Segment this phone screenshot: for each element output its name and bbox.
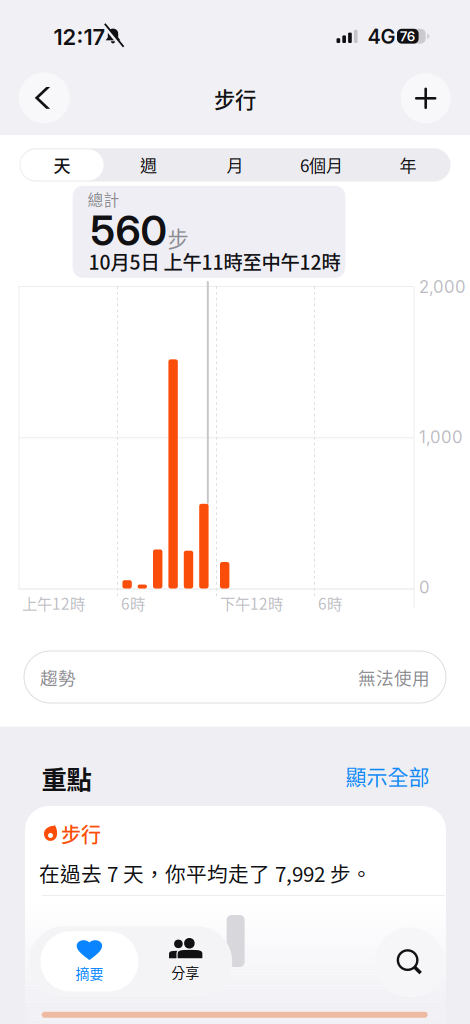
staticText: 顯示全部 <box>346 760 430 791</box>
button[interactable]: 年 <box>365 148 451 182</box>
staticText: 步行 <box>61 819 101 848</box>
staticText: 6個月 <box>300 152 343 177</box>
staticText: 6時 <box>121 592 145 614</box>
staticText: 步行 <box>214 83 256 114</box>
staticText: 6時 <box>318 592 342 614</box>
button[interactable]: 顯示全部 <box>310 758 430 792</box>
staticText: 1,000 <box>419 427 463 447</box>
button[interactable]: Back <box>19 72 70 123</box>
staticText: 上午12時 <box>22 592 85 614</box>
staticText: 0 <box>419 577 430 598</box>
staticText: 無法使用 <box>358 664 430 690</box>
button[interactable]: 趨勢 <box>24 651 446 703</box>
button[interactable]: 週 <box>105 148 191 182</box>
staticText: 560 <box>90 205 166 255</box>
staticText: 在過去 7 天，你平均走了 7,992 步。 <box>39 858 372 888</box>
staticText: 2,000 <box>419 277 466 297</box>
button[interactable]: Search <box>375 927 445 997</box>
button[interactable]: Add data <box>401 73 451 123</box>
staticText: 下午12時 <box>220 592 283 614</box>
staticText: 月 <box>226 152 243 177</box>
staticText: 年 <box>399 152 416 177</box>
staticText: 10月5日 上午11時至中午12時 <box>89 247 341 275</box>
staticText: 分享 <box>171 962 199 982</box>
staticText: 週 <box>140 152 157 177</box>
staticText: 76 <box>400 28 416 44</box>
staticText: 4G <box>367 24 395 48</box>
staticText: 步 <box>167 223 188 253</box>
button[interactable]: 摘要 <box>40 930 138 990</box>
button[interactable]: 天 <box>19 148 105 182</box>
staticText: 12:17 <box>53 24 105 50</box>
staticText: 總計 <box>88 188 120 211</box>
staticText: 重點 <box>41 760 91 796</box>
button[interactable]: 6個月 <box>278 148 364 182</box>
staticText: 天 <box>53 152 70 177</box>
button[interactable]: 月 <box>192 148 278 182</box>
button[interactable]: 分享 <box>139 930 231 990</box>
staticText: 趨勢 <box>40 664 76 690</box>
staticText: 摘要 <box>75 963 103 983</box>
